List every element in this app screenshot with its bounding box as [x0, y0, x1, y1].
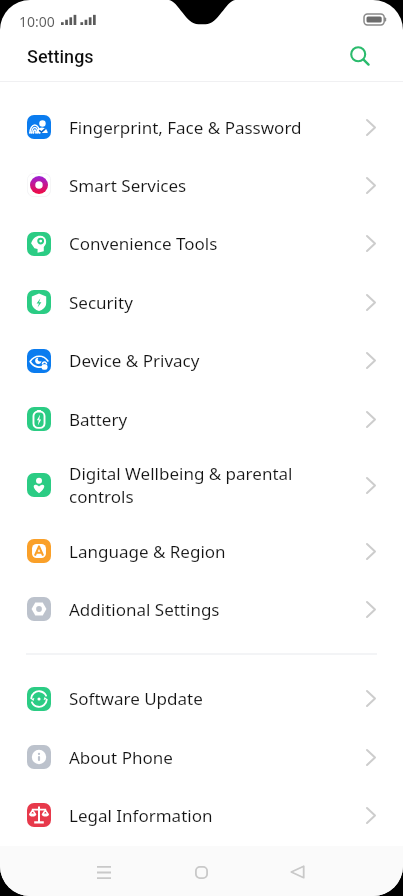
staticText: Device & Privacy — [69, 349, 344, 372]
staticText: Additional Settings — [69, 598, 344, 621]
staticText: 10:00 — [19, 12, 55, 31]
staticText: Digital Wellbeing & parental controls — [69, 462, 344, 508]
button[interactable]: Recents — [81, 849, 127, 895]
button[interactable]: Battery — [0, 390, 403, 448]
button[interactable]: Convenience Tools — [0, 214, 403, 273]
staticText: Convenience Tools — [69, 232, 344, 255]
staticText: Battery — [69, 408, 344, 431]
staticText: Smart Services — [69, 174, 344, 197]
button[interactable]: Search — [341, 37, 379, 75]
staticText: Language & Region — [69, 540, 344, 563]
button[interactable]: Digital Wellbeing & parental controls — [0, 448, 403, 522]
button[interactable]: Home — [178, 849, 224, 895]
button[interactable]: Additional Settings — [0, 580, 403, 638]
staticText: Security — [69, 291, 344, 314]
staticText: About Phone — [69, 746, 344, 769]
button[interactable]: Security — [0, 273, 403, 331]
button[interactable]: Smart Services — [0, 156, 403, 214]
button[interactable]: Fingerprint, Face & Password — [0, 98, 403, 156]
staticText: Legal Information — [69, 804, 344, 827]
button[interactable]: About Phone — [0, 728, 403, 786]
staticText: Settings — [27, 46, 94, 67]
button[interactable]: Device & Privacy — [0, 331, 403, 390]
button[interactable]: Language & Region — [0, 522, 403, 580]
button[interactable]: Back — [274, 849, 320, 895]
staticText: Fingerprint, Face & Password — [69, 116, 344, 139]
button[interactable]: Software Update — [0, 669, 403, 728]
staticText: Software Update — [69, 687, 344, 710]
button[interactable]: Legal Information — [0, 786, 403, 844]
